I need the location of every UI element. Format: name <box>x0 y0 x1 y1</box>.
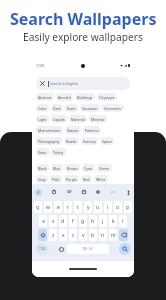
staticText: o <box>116 204 120 211</box>
button[interactable]: Geometric <box>102 104 124 112</box>
button[interactable]: Black <box>36 164 49 172</box>
button[interactable]: f <box>69 215 77 227</box>
button[interactable]: h <box>89 215 97 227</box>
button[interactable]: Stickers <box>81 189 87 195</box>
button[interactable]: m <box>109 229 117 241</box>
button[interactable]: Purple <box>64 175 79 183</box>
button[interactable]: Red <box>81 175 92 183</box>
staticText: , <box>53 247 54 252</box>
staticText: Abstract <box>38 95 52 100</box>
staticText: v <box>82 232 85 239</box>
staticText: t <box>77 204 79 211</box>
button[interactable]: Color <box>36 104 49 112</box>
button[interactable]: Clipboard <box>51 189 57 195</box>
staticText: Photography <box>38 139 60 144</box>
button[interactable]: o <box>114 201 122 213</box>
button[interactable]: Liquids <box>51 115 67 123</box>
button[interactable]: n <box>99 229 107 241</box>
button[interactable]: Expand toolbar <box>35 189 42 196</box>
button[interactable]: ?123 <box>36 243 48 255</box>
button[interactable]: z <box>49 229 57 241</box>
button[interactable]: Emoji <box>57 242 66 256</box>
button[interactable]: Voice input <box>125 189 131 195</box>
staticText: Purple <box>66 177 77 182</box>
button[interactable]: Monochrome <box>36 126 63 134</box>
button[interactable]: Material <box>69 115 87 123</box>
button[interactable]: p <box>124 201 132 213</box>
button[interactable]: Brown <box>65 164 80 172</box>
button[interactable]: c <box>69 229 77 241</box>
button[interactable]: Search <box>119 243 131 255</box>
button[interactable]: l <box>119 215 127 227</box>
button[interactable]: u <box>94 201 102 213</box>
staticText: m <box>111 232 116 239</box>
button[interactable]: k <box>109 215 117 227</box>
staticText: a <box>42 218 45 225</box>
staticText: e <box>57 204 60 211</box>
button[interactable]: Shift <box>38 229 47 241</box>
staticText: h <box>91 218 95 225</box>
button[interactable]: Nature <box>65 126 81 134</box>
button[interactable]: s <box>49 215 57 227</box>
staticText: ?123 <box>39 247 46 251</box>
button[interactable]: More options <box>110 189 116 195</box>
button[interactable]: Cityscape <box>97 93 117 101</box>
button[interactable]: Patterns <box>83 126 101 134</box>
button[interactable]: Abstract <box>36 93 54 101</box>
button[interactable]: Blue <box>51 164 63 172</box>
button[interactable]: EN · SV <box>67 244 109 254</box>
button[interactable]: Clear search <box>36 77 130 90</box>
button[interactable]: Amoled <box>56 93 73 101</box>
button[interactable]: Grey <box>36 175 48 183</box>
staticText: p <box>126 204 130 211</box>
button[interactable]: Buildings <box>75 93 95 101</box>
button[interactable]: Pink <box>50 175 62 183</box>
staticText: Search in English <box>50 81 78 86</box>
staticText: Gaussian <box>82 106 98 111</box>
button[interactable]: e <box>54 201 62 213</box>
button[interactable]: Roads <box>64 137 79 145</box>
staticText: f <box>72 218 74 225</box>
button[interactable]: q <box>34 201 42 213</box>
staticText: Earth <box>67 106 76 111</box>
button[interactable]: w <box>44 201 52 213</box>
button[interactable]: Stars <box>36 148 49 156</box>
button[interactable]: Photography <box>36 137 62 145</box>
button[interactable]: j <box>99 215 107 227</box>
button[interactable]: Space <box>100 137 114 145</box>
button[interactable]: r <box>64 201 72 213</box>
button[interactable]: GIF <box>66 189 72 195</box>
button[interactable]: , <box>49 242 57 256</box>
button[interactable]: b <box>89 229 97 241</box>
staticText: y <box>87 204 90 211</box>
button[interactable]: Scenery <box>81 137 98 145</box>
staticText: Red <box>83 177 90 182</box>
staticText: Buildings <box>77 95 93 100</box>
staticText: Monochrome <box>38 128 61 133</box>
button[interactable]: v <box>79 229 87 241</box>
staticText: Cityscape <box>99 95 115 100</box>
button[interactable]: i <box>104 201 112 213</box>
button[interactable]: g <box>79 215 87 227</box>
button[interactable]: y <box>84 201 92 213</box>
staticText: Light <box>38 117 47 122</box>
staticText: Search Wallpapers <box>10 8 157 30</box>
button[interactable]: Backspace <box>119 229 128 241</box>
button[interactable]: t <box>74 201 82 213</box>
button[interactable]: a <box>39 215 47 227</box>
button[interactable]: Settings <box>95 189 101 195</box>
button[interactable]: d <box>59 215 67 227</box>
button[interactable]: Gaussian <box>80 104 100 112</box>
button[interactable]: Dark <box>51 104 63 112</box>
button[interactable]: Minimal <box>89 115 107 123</box>
staticText: l <box>122 218 124 225</box>
button[interactable]: Green <box>97 164 112 172</box>
button[interactable]: Trinity <box>51 148 66 156</box>
button[interactable]: Earth <box>65 104 78 112</box>
button[interactable]: Light <box>36 115 49 123</box>
button[interactable]: x <box>59 229 67 241</box>
button[interactable]: Cyan <box>82 164 95 172</box>
staticText: Pink <box>52 177 60 182</box>
button[interactable]: White <box>94 175 108 183</box>
